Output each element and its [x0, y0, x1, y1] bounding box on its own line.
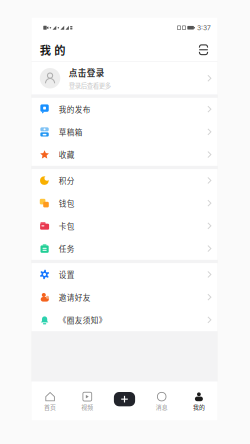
staticText: 点击登录: [69, 66, 105, 79]
staticText: 积分: [59, 175, 75, 186]
staticText: 消息: [156, 403, 168, 411]
button[interactable]: 视频: [69, 392, 106, 420]
staticText: 我: [40, 42, 51, 58]
staticText: 任务: [59, 243, 75, 254]
button[interactable]: Scan code: [196, 43, 210, 57]
button[interactable]: 邀请好友: [31, 286, 217, 308]
staticText: 登录后查看更多: [69, 81, 111, 90]
staticText: 草稿箱: [59, 126, 83, 137]
button[interactable]: 《圈友须知》: [31, 308, 217, 331]
staticText: 首页: [44, 403, 56, 411]
button[interactable]: 消息: [143, 392, 180, 420]
staticText: 3:37: [197, 24, 211, 32]
button[interactable]: 收藏: [31, 143, 217, 166]
staticText: 钱包: [59, 198, 75, 209]
staticText: 的: [54, 42, 65, 58]
button[interactable]: 首页: [31, 392, 69, 420]
staticText: 收藏: [59, 149, 75, 160]
staticText: 邀请好友: [59, 292, 91, 303]
button[interactable]: Create post: [106, 392, 143, 420]
staticText: 视频: [81, 403, 93, 411]
button[interactable]: 任务: [31, 237, 217, 260]
staticText: 卡包: [59, 220, 75, 231]
button[interactable]: 草稿箱: [31, 120, 217, 143]
staticText: 《圈友须知》: [59, 314, 107, 325]
button[interactable]: 设置: [31, 263, 217, 286]
button[interactable]: 我的: [180, 392, 217, 420]
button[interactable]: 点击登录: [31, 62, 217, 95]
button[interactable]: 钱包: [31, 192, 217, 214]
staticText: 我的发布: [59, 104, 91, 115]
staticText: 我的: [193, 403, 205, 411]
button[interactable]: 卡包: [31, 214, 217, 237]
button[interactable]: 积分: [31, 169, 217, 192]
button[interactable]: 我的发布: [31, 98, 217, 120]
staticText: 设置: [59, 269, 75, 280]
